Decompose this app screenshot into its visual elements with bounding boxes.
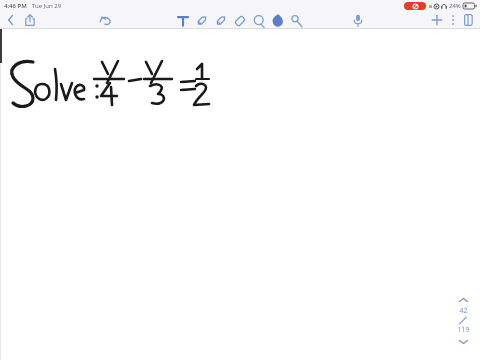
staticText: Tue Jun 29 xyxy=(32,2,62,10)
button[interactable]: Previous page xyxy=(455,294,471,306)
button[interactable]: Pen xyxy=(195,13,209,28)
button[interactable]: Next page xyxy=(455,335,471,348)
button[interactable]: Undo xyxy=(99,13,113,27)
staticText: 24% xyxy=(449,2,461,10)
button[interactable]: Page view xyxy=(462,13,475,27)
staticText: 119 xyxy=(457,325,470,335)
button[interactable]: Back xyxy=(5,13,17,27)
button[interactable]: Share xyxy=(23,13,37,27)
button[interactable]: 42 xyxy=(452,306,474,335)
button[interactable]: Ink colour xyxy=(271,13,285,28)
button[interactable]: Eraser xyxy=(233,14,247,28)
staticText: 4:46 PM xyxy=(4,2,27,10)
staticText: 42 xyxy=(459,306,468,316)
button[interactable]: Lasso select xyxy=(252,14,266,28)
button[interactable]: Record audio xyxy=(352,13,364,27)
button[interactable]: Highlighter xyxy=(214,13,228,28)
button[interactable]: More options xyxy=(449,13,457,27)
button[interactable]: Text tool xyxy=(176,14,190,28)
button[interactable]: Add page xyxy=(430,13,444,27)
button[interactable]: Shapes xyxy=(290,14,304,28)
